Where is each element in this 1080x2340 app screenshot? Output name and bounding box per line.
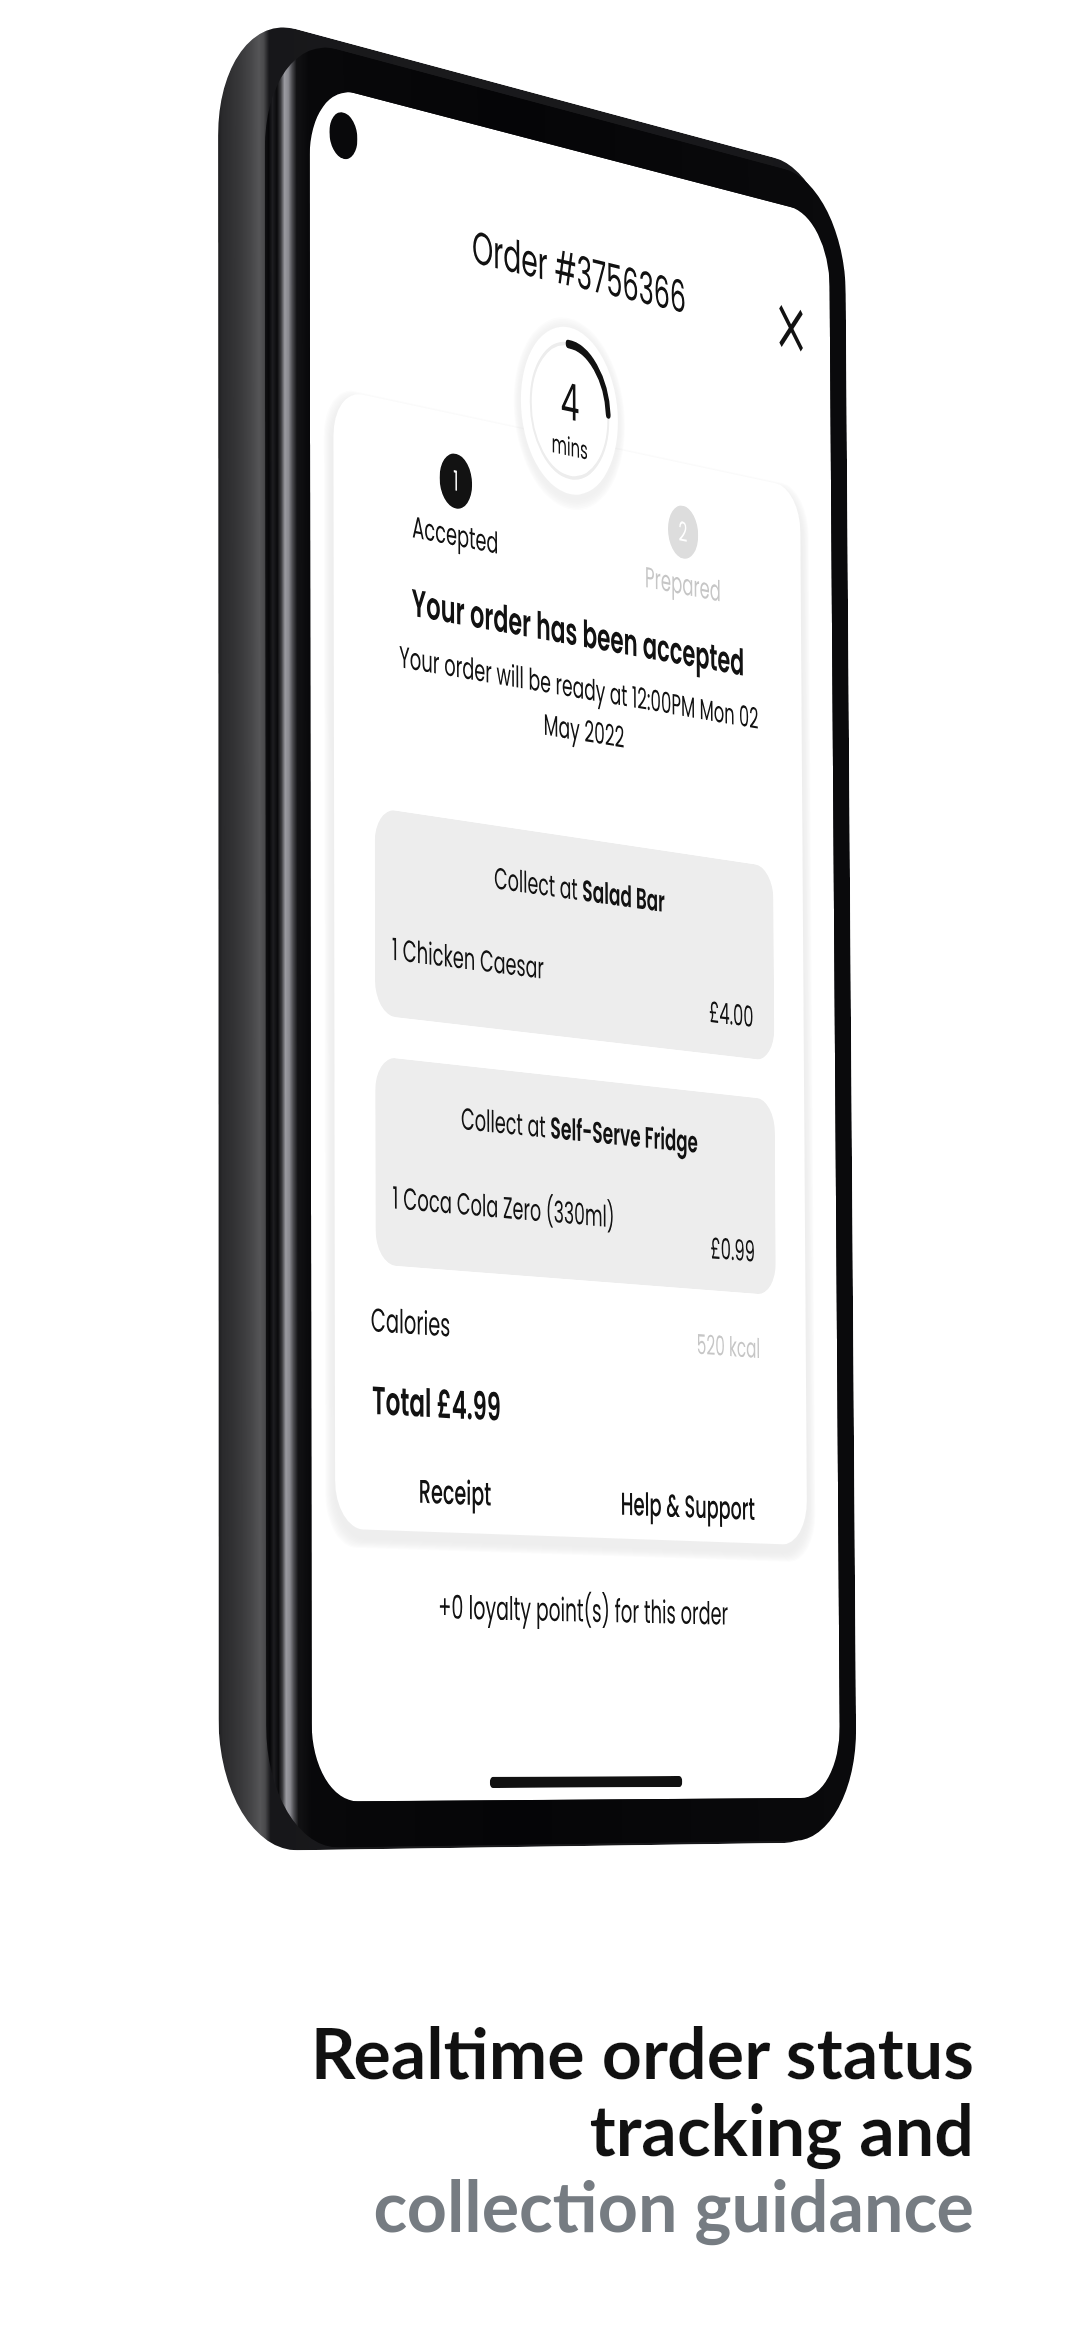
staticText: 1 Coca Cola Zero (330ml): [392, 1177, 615, 1238]
staticText: Realtime order status tracking and colle…: [60, 2010, 974, 2246]
staticText: £4.00: [709, 992, 754, 1038]
staticText: Receipt: [419, 1468, 491, 1517]
button[interactable]: Collect at Self-Serve Fridge: [375, 1056, 776, 1295]
staticText: Calories: [371, 1296, 451, 1348]
staticText: mins: [551, 425, 588, 468]
staticText: Order #3756366: [310, 175, 830, 363]
staticText: Collect at Self-Serve Fridge: [375, 1089, 775, 1171]
staticText: Prepared: [645, 557, 721, 612]
button[interactable]: Close: [773, 293, 809, 363]
button[interactable]: Help & Support: [616, 1473, 760, 1539]
staticText: £0.99: [710, 1228, 755, 1273]
staticText: Your order has been accepted: [310, 556, 833, 704]
staticText: Total £4.99: [372, 1373, 501, 1434]
button[interactable]: 2: [582, 485, 781, 618]
staticText: 4: [560, 364, 580, 439]
staticText: +0 loyalty point(s) for this order: [311, 1580, 839, 1638]
staticText: Collect at Salad Bar: [375, 840, 774, 938]
staticText: 2: [678, 512, 688, 552]
staticText: Accepted: [412, 506, 499, 565]
staticText: 1 Chicken Caesar: [392, 928, 544, 990]
button[interactable]: Receipt: [414, 1459, 496, 1525]
button[interactable]: Collect at Salad Bar: [375, 807, 774, 1061]
staticText: Help & Support: [621, 1481, 755, 1531]
staticText: 520 kcal: [697, 1325, 760, 1368]
button[interactable]: 1: [347, 431, 561, 571]
staticText: 1: [453, 461, 458, 501]
staticText: Your order will be ready at 12:00PM Mon …: [378, 632, 777, 783]
